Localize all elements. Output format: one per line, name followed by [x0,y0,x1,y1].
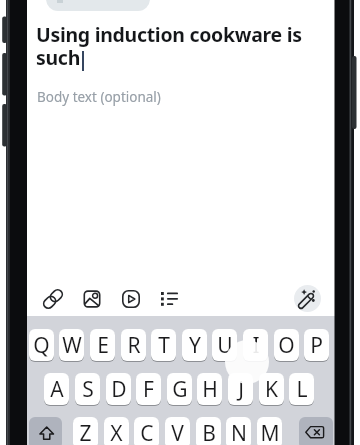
button[interactable]: Q [29,329,54,361]
staticText: Using induction cookware is such [36,21,302,70]
button[interactable]: N [226,417,251,445]
button[interactable]: C [134,417,159,445]
button[interactable]: F [136,373,161,405]
button[interactable]: J [228,373,253,405]
button[interactable]: O [274,329,299,361]
staticText: H [202,375,218,404]
staticText: X [110,419,123,445]
button[interactable] [299,417,333,445]
staticText: Q [33,331,50,360]
staticText: N [231,419,247,445]
staticText: C [140,419,154,445]
button[interactable]: Y [182,329,207,361]
staticText: L [296,375,308,404]
button[interactable]: K [259,373,284,405]
staticText: K [265,375,278,404]
staticText: S [82,375,94,404]
staticText: M [260,419,280,445]
button[interactable]: V [165,417,190,445]
button[interactable] [37,283,69,315]
button[interactable]: B [196,417,221,445]
staticText: A [50,375,64,404]
staticText: P [310,331,323,360]
staticText: Y [189,331,201,360]
staticText: Z [79,419,92,445]
staticText: O [278,331,295,360]
button[interactable]: Z [73,417,98,445]
staticText: T [158,331,170,360]
staticText: V [171,419,184,445]
button[interactable]: U [212,329,237,361]
button[interactable]: R [121,329,146,361]
button[interactable]: M [257,417,282,445]
button[interactable]: D [106,373,131,405]
button[interactable]: A [44,373,69,405]
staticText: Body text (optional) [37,88,161,106]
button[interactable] [294,285,321,312]
button[interactable]: E [90,329,115,361]
button[interactable]: W [59,329,84,361]
button[interactable] [46,0,150,11]
button[interactable]: T [151,329,176,361]
button[interactable]: S [75,373,100,405]
staticText: J [238,375,244,404]
staticText: B [202,419,216,445]
button[interactable] [153,283,185,315]
button[interactable] [29,417,62,445]
staticText: U [217,331,233,360]
button[interactable] [76,283,108,315]
button[interactable]: H [197,373,222,405]
staticText: I [252,331,260,360]
staticText: E [97,331,109,360]
staticText: R [127,331,141,360]
button[interactable]: X [104,417,129,445]
button[interactable]: L [289,373,314,405]
staticText: D [111,375,127,404]
staticText: W [62,331,82,360]
button[interactable]: P [304,329,329,361]
button[interactable]: I [243,329,268,361]
staticText: G [172,375,188,404]
button[interactable]: G [167,373,192,405]
staticText: F [143,375,154,404]
button[interactable] [115,283,147,315]
